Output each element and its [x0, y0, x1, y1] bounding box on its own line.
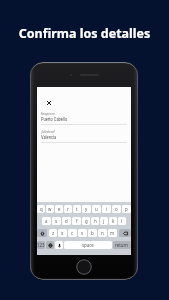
staticText: p: [125, 206, 128, 212]
staticText: b: [91, 230, 94, 236]
staticText: ¿Adónde vas?: [41, 131, 56, 134]
button[interactable]: Dictado: [55, 241, 63, 249]
staticText: k: [112, 218, 115, 224]
button[interactable]: a: [42, 217, 51, 225]
staticText: z: [52, 230, 55, 236]
staticText: q: [40, 206, 43, 212]
button[interactable]: Borrar: [119, 229, 131, 237]
staticText: Confirma los detalles: [0, 25, 169, 42]
staticText: a: [45, 218, 48, 224]
staticText: s: [55, 218, 58, 224]
button[interactable]: n: [98, 229, 107, 237]
button[interactable]: Idioma: [46, 241, 54, 249]
button[interactable]: t: [73, 205, 81, 213]
button[interactable]: j: [100, 217, 108, 225]
button[interactable]: o: [112, 205, 121, 213]
button[interactable]: b: [88, 229, 97, 237]
staticText: v: [81, 230, 84, 236]
staticText: l: [121, 218, 123, 224]
button[interactable]: v: [78, 229, 87, 237]
button[interactable]: Mayusculas: [37, 229, 47, 237]
staticText: return: [115, 242, 129, 248]
button[interactable]: e: [55, 205, 63, 213]
button[interactable]: w: [46, 205, 54, 213]
button[interactable]: m: [108, 229, 117, 237]
button[interactable]: k: [109, 217, 117, 225]
button[interactable]: p: [122, 205, 131, 213]
button[interactable]: y: [82, 205, 91, 213]
staticText: m: [110, 230, 115, 236]
staticText: c: [71, 230, 74, 236]
staticText: o: [115, 206, 118, 212]
staticText: x: [61, 230, 64, 236]
staticText: w: [48, 206, 52, 212]
staticText: h: [94, 218, 97, 224]
staticText: Valencia: [41, 135, 57, 140]
button[interactable]: Inicio: [76, 259, 92, 275]
button[interactable]: r: [64, 205, 72, 213]
button[interactable]: Recogerse en: [41, 113, 127, 125]
button[interactable]: h: [91, 217, 99, 225]
staticText: j: [103, 218, 105, 224]
button[interactable]: z: [49, 229, 57, 237]
button[interactable]: Cerrar: [44, 98, 53, 107]
button[interactable]: d: [62, 217, 71, 225]
button[interactable]: s: [52, 217, 61, 225]
button[interactable]: 123: [37, 241, 45, 249]
button[interactable]: f: [72, 217, 81, 225]
staticText: r: [67, 206, 69, 212]
button[interactable]: l: [118, 217, 126, 225]
staticText: g: [85, 218, 88, 224]
staticText: i: [106, 206, 108, 212]
button[interactable]: space: [64, 241, 112, 249]
staticText: u: [95, 206, 98, 212]
staticText: 123: [37, 242, 45, 248]
button[interactable]: x: [58, 229, 67, 237]
staticText: Recogerse en: [41, 113, 55, 116]
button[interactable]: ¿Adónde vas?: [41, 131, 127, 143]
staticText: t: [76, 206, 78, 212]
button[interactable]: g: [82, 217, 90, 225]
button[interactable]: c: [68, 229, 77, 237]
staticText: n: [101, 230, 104, 236]
button[interactable]: u: [92, 205, 101, 213]
staticText: Puerto Cabello: [41, 117, 68, 122]
staticText: d: [65, 218, 68, 224]
staticText: e: [58, 206, 61, 212]
button[interactable]: i: [102, 205, 111, 213]
staticText: f: [76, 218, 78, 224]
staticText: y: [85, 206, 88, 212]
button[interactable]: q: [37, 205, 45, 213]
staticText: space: [82, 242, 94, 248]
button[interactable]: return: [113, 241, 131, 249]
